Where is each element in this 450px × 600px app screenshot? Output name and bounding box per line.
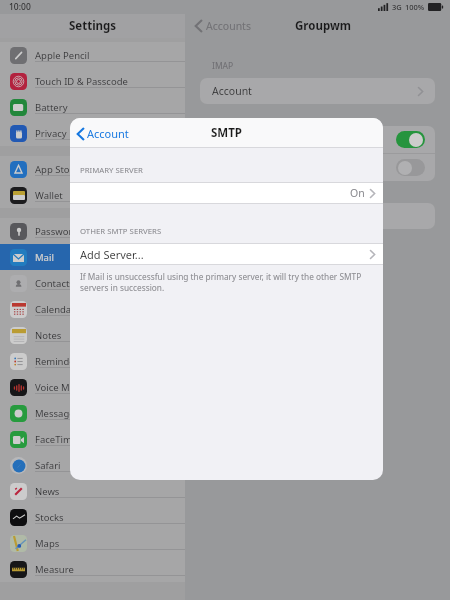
staticText: Voice Memos: [35, 381, 95, 394]
staticText: Mail: [35, 251, 54, 264]
button[interactable]: Touch ID & Passcode: [0, 68, 185, 94]
button[interactable]: Add Server...: [70, 243, 383, 265]
staticText: Stocks: [35, 511, 64, 524]
staticText: News: [35, 485, 60, 498]
button[interactable]: Stocks: [0, 504, 185, 530]
staticText: 100%: [405, 2, 425, 12]
button[interactable]: Maps: [0, 530, 185, 556]
button[interactable]: Accounts: [195, 19, 251, 33]
staticText: Calendar: [35, 303, 76, 316]
staticText: 3G: [392, 2, 402, 12]
button[interactable]: News: [0, 478, 185, 504]
button[interactable]: App Store: [0, 156, 185, 182]
staticText: Settings: [69, 18, 117, 34]
button[interactable]: Reminders: [0, 348, 185, 374]
button[interactable]: Calendar: [0, 296, 185, 322]
button[interactable]: Apple Pencil: [0, 42, 185, 68]
staticText: Apple Pencil: [35, 49, 90, 62]
button[interactable]: [200, 154, 435, 181]
button[interactable]: [200, 203, 435, 229]
button[interactable]: Account: [77, 126, 129, 141]
staticText: On: [350, 186, 365, 200]
button[interactable]: Notes: [0, 322, 185, 348]
staticText: Measure: [35, 563, 74, 576]
staticText: Privacy: [35, 127, 67, 140]
button[interactable]: On: [70, 182, 383, 204]
staticText: Groupwm: [295, 18, 351, 34]
button[interactable]: Wallet: [0, 182, 185, 208]
staticText: Accounts: [206, 19, 251, 33]
staticText: Wallet: [35, 189, 63, 202]
button[interactable]: Privacy: [0, 120, 185, 146]
staticText: Safari: [35, 459, 61, 472]
button[interactable]: Voice Memos: [0, 374, 185, 400]
button[interactable]: Mail: [0, 244, 185, 270]
button[interactable]: [200, 126, 435, 153]
staticText: Notes: [35, 329, 62, 342]
button[interactable]: FaceTime: [0, 426, 185, 452]
staticText: Passwords & Accounts: [35, 225, 136, 238]
button[interactable]: Messages: [0, 400, 185, 426]
staticText: Battery: [35, 101, 68, 114]
staticText: Add Server...: [80, 247, 144, 262]
button[interactable]: Measure: [0, 556, 185, 582]
staticText: PRIMARY SERVER: [80, 165, 143, 176]
staticText: FaceTime: [35, 433, 78, 446]
staticText: Messages: [35, 407, 80, 420]
staticText: 10:00: [9, 1, 31, 13]
staticText: SMTP: [211, 125, 242, 141]
button[interactable]: Battery: [0, 94, 185, 120]
staticText: Touch ID & Passcode: [35, 75, 128, 88]
button[interactable]: Account: [200, 78, 435, 104]
staticText: Account: [212, 84, 252, 98]
button[interactable]: Passwords & Accounts: [0, 218, 185, 244]
staticText: Account: [87, 126, 129, 141]
staticText: OTHER SMTP SERVERS: [80, 226, 162, 237]
staticText: Maps: [35, 537, 60, 550]
button[interactable]: Safari: [0, 452, 185, 478]
staticText: If Mail is unsuccessful using the primar…: [80, 271, 369, 293]
staticText: IMAP: [212, 60, 234, 72]
button[interactable]: Contacts: [0, 270, 185, 296]
staticText: Reminders: [35, 355, 84, 368]
staticText: App Store: [35, 163, 79, 176]
staticText: Contacts: [35, 277, 74, 290]
